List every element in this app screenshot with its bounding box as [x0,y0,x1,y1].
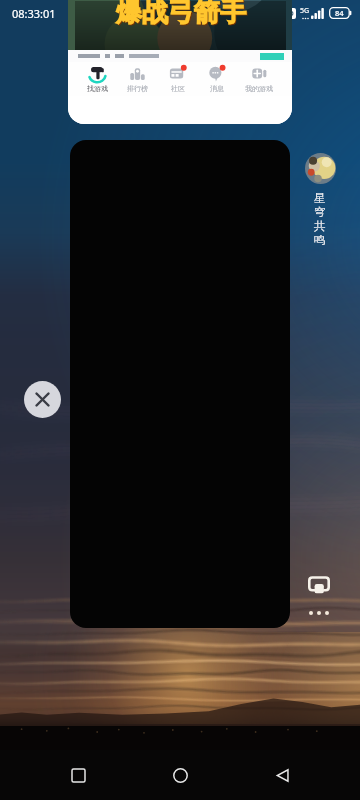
staticText: 5G [300,6,310,16]
button[interactable]: Home [156,751,204,799]
staticText: 爆战弓箭手 [117,0,247,30]
staticText: 穹 [314,205,326,219]
staticText: 消息 [210,84,224,93]
staticText: 我的游戏 [245,84,273,93]
button[interactable]: 我的游戏 [244,62,274,93]
staticText: 共 [314,219,326,233]
button[interactable]: Back [258,751,306,799]
staticText: 08:33:01 [12,6,56,21]
button[interactable]: 社区 [167,62,188,93]
button[interactable]: Picture in picture [305,571,333,599]
button[interactable]: 爆战弓箭手 [68,0,292,124]
staticText: 找游戏 [87,84,108,93]
button[interactable] [70,140,290,628]
button[interactable]: Close [24,381,61,418]
staticText: 排行榜 [127,84,148,93]
staticText: 爆战弓箭手 [116,0,246,29]
staticText: 社区 [171,84,185,93]
button[interactable]: More options [305,604,333,622]
staticText: HD [284,9,294,18]
button[interactable]: 排行榜 [126,62,149,93]
button[interactable]: App icon [305,153,336,184]
button[interactable]: 找游戏 [86,62,109,93]
staticText: 84 [335,8,344,18]
button[interactable]: 消息 [206,62,227,93]
staticText: 鸣 [314,233,326,247]
button[interactable]: Recents [54,751,102,799]
staticText: 星 [314,191,326,205]
